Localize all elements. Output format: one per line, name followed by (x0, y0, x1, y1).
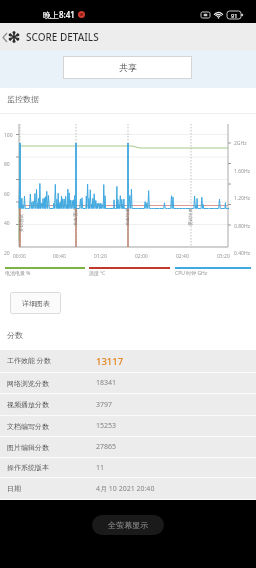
staticText: 日期 (7, 484, 21, 493)
staticText: 13117 (96, 355, 124, 368)
button[interactable]: 日期 (0, 478, 256, 500)
staticText: 15253 (96, 421, 117, 431)
button[interactable]: Back (0, 26, 22, 48)
button[interactable]: 网络浏览分数 (0, 373, 256, 394)
staticText: SCORE DETAILS (26, 30, 99, 44)
staticText: 0.80Hz (234, 223, 250, 230)
staticText: 1.60Hz (234, 168, 250, 175)
staticText: 1.20Hz (234, 195, 250, 202)
staticText: 工作效能 分数 (7, 356, 51, 366)
staticText: 网络浏览分数 (7, 379, 49, 388)
staticText: 监控数据 (7, 94, 39, 104)
staticText: 温度 ℃ (89, 270, 106, 277)
staticText: 02:00 (135, 253, 148, 260)
staticText: 00:00 (13, 253, 26, 260)
staticText: 03:20 (217, 253, 230, 260)
staticText: 02:40 (176, 253, 189, 260)
button[interactable]: 工作效能 分数 (0, 350, 256, 373)
staticText: 开始测试 (19, 214, 25, 232)
staticText: 60 (4, 191, 10, 198)
staticText: 操作系统版本 (7, 463, 49, 472)
button[interactable]: 详细图表 (10, 292, 61, 314)
staticText: 晚上8:41 (43, 9, 75, 20)
button[interactable]: 视频播放分数 (0, 394, 256, 416)
staticText: 全萤幕显示 (108, 520, 148, 530)
staticText: 00:40 (53, 253, 66, 260)
staticText: 视频播放分数 (7, 400, 49, 409)
staticText: 40 (4, 220, 10, 227)
staticText: 电池电量 % (5, 270, 31, 277)
button[interactable]: 共享 (63, 56, 192, 79)
staticText: 图片编辑分数 (7, 443, 49, 452)
staticText: 3797 (96, 400, 113, 410)
staticText: 01:20 (94, 253, 107, 260)
staticText: 91 (231, 12, 238, 19)
staticText: 18341 (96, 378, 117, 388)
staticText: 27865 (96, 442, 117, 452)
staticText: 80 (4, 161, 10, 168)
button[interactable]: 图片编辑分数 (0, 437, 256, 458)
staticText: CPU 时钟 GHz (175, 270, 208, 277)
staticText: 文档编写分数 (7, 422, 49, 431)
staticText: 分数 (7, 330, 23, 340)
button[interactable]: 全萤幕显示 (92, 515, 164, 535)
staticText: 充电测试 (73, 208, 79, 226)
staticText: 100 (4, 132, 13, 139)
staticText: 2GHz (234, 140, 247, 147)
button[interactable]: 操作系统版本 (0, 458, 256, 478)
staticText: 4月 10 2021 20:40 (96, 484, 155, 494)
button[interactable]: 文档编写分数 (0, 416, 256, 437)
staticText: 20 (4, 250, 10, 257)
staticText: 充电结束 (125, 208, 131, 226)
staticText: 0.40Hz (234, 250, 250, 257)
staticText: 11 (96, 463, 105, 473)
staticText: 测试结束 (188, 208, 194, 226)
staticText: 详细图表 (22, 299, 50, 308)
staticText: 共享 (119, 62, 137, 73)
